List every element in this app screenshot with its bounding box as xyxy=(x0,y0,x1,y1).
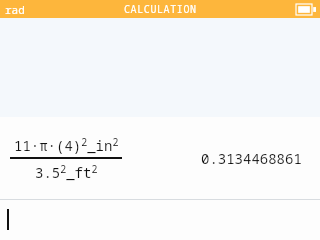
staticText: rad xyxy=(5,2,25,17)
staticText: 3.52_ft2 xyxy=(35,162,98,182)
staticText: 0.3134468861 xyxy=(201,149,302,168)
button[interactable]: 11·π·(4)2_in2 xyxy=(0,117,320,199)
button[interactable]: Expression input xyxy=(0,200,320,240)
button[interactable]: Battery xyxy=(292,0,320,18)
staticText: 11·π·(4)2_in2 xyxy=(14,135,119,155)
button[interactable]: rad xyxy=(0,0,30,18)
staticText: CALCULATION xyxy=(124,2,197,16)
